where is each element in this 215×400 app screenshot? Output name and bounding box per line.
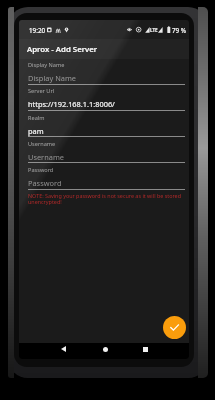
button[interactable]: Home xyxy=(95,341,115,357)
button[interactable]: Recent apps xyxy=(135,341,155,357)
staticText: Username xyxy=(28,152,64,162)
staticText: 79 % xyxy=(172,26,187,35)
staticText: https://192.168.1.1:8006/ xyxy=(28,99,115,109)
staticText: Realm xyxy=(28,114,45,122)
button[interactable]: Save server xyxy=(163,316,186,339)
staticText: Aprox - Add Server xyxy=(27,44,98,55)
staticText: Display Name xyxy=(28,73,76,83)
staticText: pam xyxy=(28,126,44,136)
staticText: 19:20 xyxy=(29,26,46,35)
button[interactable]: Aprox - Add Server xyxy=(19,39,189,59)
staticText: Username xyxy=(28,140,56,148)
staticText: Display Name xyxy=(28,61,65,69)
staticText: Password xyxy=(28,178,62,188)
staticText: LTE xyxy=(150,27,158,33)
button[interactable]: Back xyxy=(53,341,73,357)
staticText: NOTE: Saving your password is not secure… xyxy=(28,192,188,206)
staticText: Password xyxy=(28,166,54,174)
staticText: Server Url xyxy=(28,87,55,95)
